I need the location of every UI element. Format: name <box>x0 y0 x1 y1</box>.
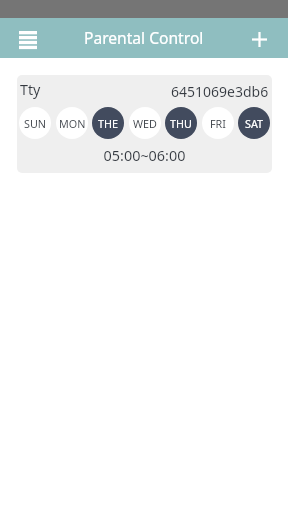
staticText: THE <box>98 116 119 131</box>
button[interactable]: THE <box>92 107 124 139</box>
staticText: FRI <box>210 116 226 131</box>
button[interactable]: SUN <box>19 107 51 139</box>
staticText: 6451069e3db6 <box>171 82 269 101</box>
staticText: WED <box>133 116 157 131</box>
button[interactable]: SAT <box>238 107 270 139</box>
staticText: 05:00~06:00 <box>17 146 272 166</box>
staticText: Tty <box>20 80 41 99</box>
button[interactable]: THU <box>165 107 197 139</box>
staticText: Parental Control <box>84 27 204 48</box>
button[interactable]: Add <box>241 20 277 56</box>
staticText: MON <box>59 116 86 131</box>
staticText: SUN <box>24 116 47 131</box>
button[interactable]: Tty <box>17 75 272 173</box>
button[interactable]: Menu <box>10 22 46 58</box>
button[interactable]: WED <box>129 107 161 139</box>
staticText: SAT <box>245 116 264 131</box>
button[interactable]: MON <box>56 107 88 139</box>
staticText: THU <box>170 116 192 131</box>
button[interactable]: FRI <box>202 107 234 139</box>
